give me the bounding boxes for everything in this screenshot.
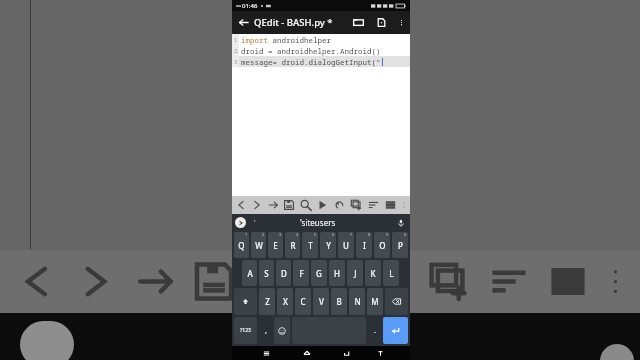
button[interactable]: S [259, 260, 274, 286]
staticText: import [241, 35, 268, 45]
staticText: 8 [368, 232, 371, 237]
button[interactable]: F [293, 260, 309, 286]
button[interactable]: C [295, 288, 311, 315]
button[interactable]: Undo [361, 250, 420, 313]
staticText: ?123 [240, 327, 251, 334]
button[interactable]: More options [392, 11, 410, 34]
button[interactable]: 5 [302, 232, 318, 258]
button[interactable]: Voice input [395, 217, 407, 229]
button[interactable]: A [242, 260, 257, 286]
staticText: K [370, 268, 376, 279]
button[interactable]: Back [6, 250, 66, 313]
button[interactable]: 0 [392, 232, 408, 258]
staticText: X [283, 296, 288, 307]
button[interactable]: Navigate up [232, 11, 254, 34]
button[interactable]: 4 [285, 232, 300, 258]
button[interactable]: Expand toolbar [235, 217, 246, 228]
button[interactable]: ?123 [234, 317, 257, 344]
staticText: S [264, 268, 269, 279]
button[interactable]: 9 [374, 232, 390, 258]
button[interactable]: Z [259, 288, 275, 315]
button[interactable]: Indent [479, 250, 538, 313]
button[interactable]: Forward [66, 250, 125, 313]
staticText: W [255, 240, 263, 251]
button[interactable]: , [259, 317, 272, 344]
button[interactable]: 6 [320, 232, 336, 258]
button[interactable]: 7 [338, 232, 354, 258]
button[interactable]: D [276, 260, 291, 286]
staticText: M [371, 296, 379, 307]
staticText: V [319, 296, 324, 307]
button[interactable]: J [347, 260, 363, 286]
button[interactable]: Duplicate [420, 250, 479, 313]
staticText: message= droid.dialogGetInput(" [241, 57, 381, 67]
button[interactable]: Go [265, 196, 281, 214]
button[interactable]: L [383, 260, 399, 286]
button[interactable]: N [349, 288, 365, 315]
button[interactable]: Save [281, 196, 297, 214]
staticText: Z [265, 296, 270, 307]
staticText: I [363, 240, 366, 251]
button[interactable]: G [311, 260, 327, 286]
button[interactable]: More options [399, 196, 409, 214]
staticText: 'siteusers [300, 217, 336, 228]
staticText: 1 [245, 232, 248, 237]
button[interactable]: Emoji [274, 317, 290, 344]
button[interactable]: Undo [331, 196, 348, 214]
button[interactable]: Indent [365, 196, 382, 214]
button[interactable]: Back [233, 196, 249, 214]
button[interactable]: More options [597, 250, 634, 313]
staticText: 6 [332, 232, 335, 237]
button[interactable]: Go [125, 250, 184, 313]
button[interactable]: Find [297, 196, 314, 214]
staticText: F [299, 268, 304, 279]
staticText: O [379, 240, 386, 251]
button[interactable]: 8 [356, 232, 372, 258]
button[interactable]: X [277, 288, 293, 315]
button[interactable]: File info [370, 11, 392, 34]
button[interactable]: Keyboard [370, 346, 390, 360]
button[interactable]: 3 [268, 232, 283, 258]
button[interactable]: Forward [249, 196, 265, 214]
button[interactable]: Back [334, 346, 359, 360]
button[interactable]: B [331, 288, 347, 315]
button[interactable]: Enter [383, 317, 408, 344]
staticText: 01:46 [242, 2, 258, 10]
staticText: 1 [234, 36, 238, 43]
button[interactable]: H [329, 260, 345, 286]
button[interactable]: Save [184, 250, 243, 313]
button[interactable]: Backspace [385, 288, 408, 315]
staticText: R [290, 240, 296, 251]
staticText: 2 [234, 47, 238, 54]
staticText: L [389, 268, 394, 279]
button[interactable]: 1 [234, 232, 249, 258]
staticText: P [398, 240, 403, 251]
button[interactable]: Find [243, 250, 302, 313]
staticText: 3 [279, 232, 282, 237]
button[interactable]: K [365, 260, 381, 286]
button[interactable]: Open folder [346, 11, 370, 34]
staticText: H [334, 268, 340, 279]
button[interactable]: Menu list [538, 250, 597, 313]
staticText: G [316, 268, 322, 279]
staticText: Q [238, 240, 245, 251]
staticText: 7 [350, 232, 353, 237]
staticText: androidhelper [268, 35, 331, 45]
button[interactable]: M [367, 288, 383, 315]
staticText: J [354, 268, 357, 279]
button[interactable]: Shift [234, 288, 257, 315]
button[interactable]: Recent apps [253, 346, 279, 360]
button[interactable]: . [368, 317, 381, 344]
staticText: 5 [314, 232, 317, 237]
button[interactable]: 2 [251, 232, 266, 258]
button[interactable]: Home [294, 346, 319, 360]
button[interactable]: V [313, 288, 329, 315]
staticText: B [336, 296, 342, 307]
button[interactable]: Duplicate [348, 196, 365, 214]
staticText: droid = androidhelper.Android() [241, 46, 381, 56]
button[interactable]: Menu list [382, 196, 399, 214]
button[interactable]: Run [314, 196, 331, 214]
staticText: 3 [234, 58, 238, 65]
button[interactable]: Run [302, 250, 361, 313]
